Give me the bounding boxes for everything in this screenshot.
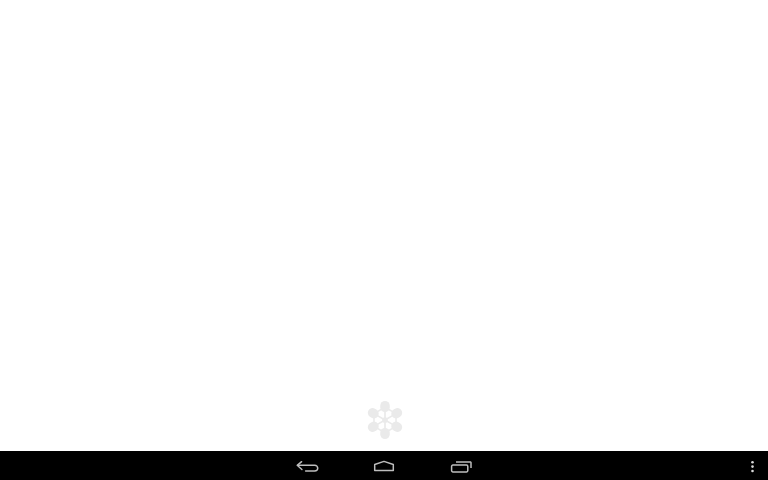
button[interactable]: Recent apps xyxy=(437,451,485,480)
button[interactable]: More options xyxy=(736,451,768,480)
button[interactable]: Home xyxy=(360,451,408,480)
button[interactable]: Back xyxy=(282,451,330,480)
